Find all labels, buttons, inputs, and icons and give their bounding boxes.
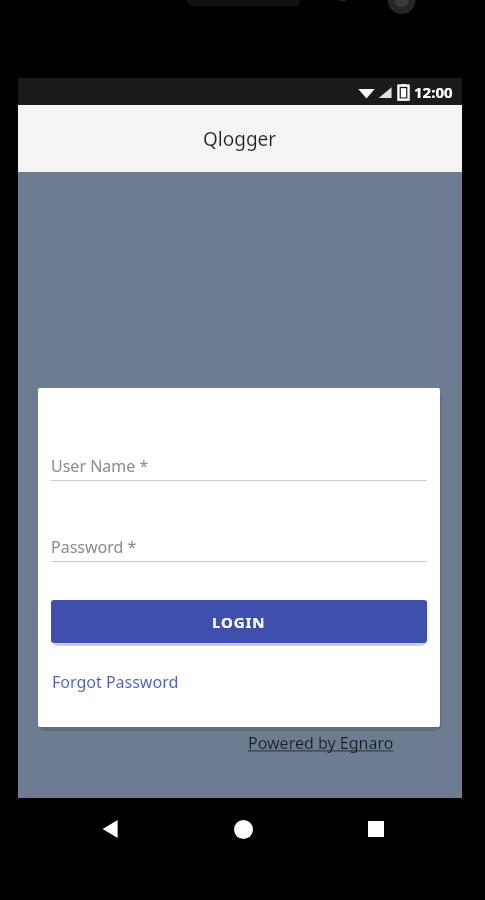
button[interactable]: LOGIN	[51, 600, 427, 643]
staticText: Powered by Egnaro	[248, 732, 394, 754]
button[interactable]: Back	[82, 801, 138, 857]
button[interactable]: Forgot Password	[51, 668, 180, 696]
button[interactable]: Password *	[38, 533, 440, 562]
staticText: User Name *	[51, 455, 149, 477]
button[interactable]: Recent apps	[348, 801, 404, 857]
button[interactable]: User Name *	[38, 452, 440, 481]
staticText: 12:00	[414, 82, 453, 102]
staticText: LOGIN	[212, 612, 266, 632]
button[interactable]: Powered by Egnaro	[246, 730, 396, 756]
staticText: Forgot Password	[52, 671, 179, 693]
staticText: Qlogger	[203, 126, 277, 152]
staticText: Password *	[51, 536, 137, 558]
button[interactable]: Home	[215, 801, 271, 857]
